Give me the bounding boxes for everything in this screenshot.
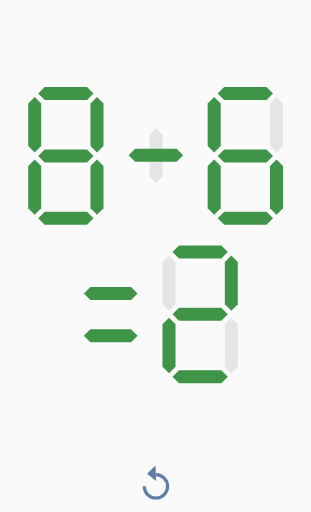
button[interactable]: Equals	[83, 286, 138, 343]
button[interactable]: Reset puzzle	[131, 462, 179, 510]
button[interactable]: Second number, six	[207, 87, 283, 225]
button[interactable]: First number, eight	[28, 87, 104, 225]
button[interactable]: Result, two	[162, 245, 238, 384]
button[interactable]: Operator, plus	[129, 128, 184, 183]
